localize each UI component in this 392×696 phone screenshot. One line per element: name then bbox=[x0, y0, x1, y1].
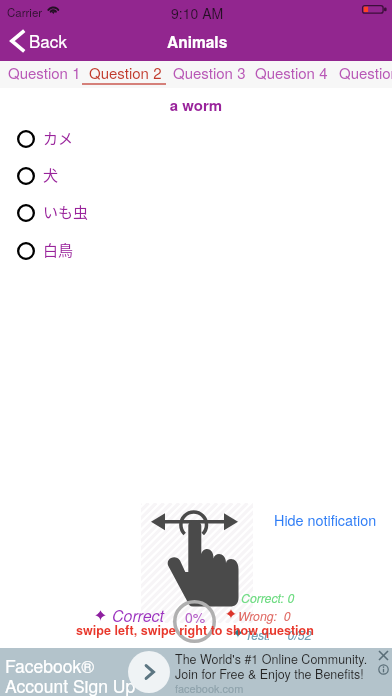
staticText: Question 2 bbox=[89, 62, 162, 83]
button[interactable]: いも虫 bbox=[0, 196, 392, 230]
button[interactable]: Question 2 bbox=[89, 61, 165, 88]
button[interactable]: Hide notification bbox=[274, 509, 377, 530]
staticText: Correct bbox=[112, 604, 165, 627]
staticText: Question 3 bbox=[173, 62, 246, 83]
staticText: Wrong: 0 bbox=[238, 607, 291, 624]
staticText: Correct: 0 bbox=[241, 589, 295, 606]
staticText: カメ bbox=[43, 127, 74, 149]
staticText: Back bbox=[29, 28, 67, 52]
staticText: swipe left, swipe right to show question bbox=[76, 621, 314, 639]
staticText: Facebook® bbox=[5, 653, 95, 678]
button[interactable]: 犬 bbox=[0, 159, 392, 193]
button[interactable]: Advertisement information bbox=[378, 664, 389, 675]
button[interactable]: 白鳥 bbox=[0, 234, 392, 268]
staticText: Question 5 bbox=[339, 62, 392, 83]
staticText: Test: 0/52 bbox=[245, 626, 312, 643]
button[interactable]: Question 5 bbox=[339, 61, 392, 88]
staticText: The World's #1 Online Community. bbox=[175, 650, 368, 668]
staticText: 白鳥 bbox=[43, 239, 74, 261]
staticText: Join for Free & Enjoy the Benefits! bbox=[175, 665, 364, 683]
staticText: Account Sign Up bbox=[5, 673, 136, 696]
button[interactable]: Question 1 bbox=[8, 61, 84, 88]
staticText: Carrier bbox=[7, 4, 43, 20]
button[interactable]: Open advertisement bbox=[128, 651, 170, 693]
staticText: 9:10 AM bbox=[171, 3, 224, 23]
button[interactable]: カメ bbox=[0, 122, 392, 156]
button[interactable]: Close advertisement bbox=[378, 650, 389, 661]
staticText: Question 1 bbox=[8, 62, 81, 83]
button[interactable]: Back bbox=[10, 20, 67, 61]
staticText: a worm bbox=[0, 94, 392, 115]
other: Swipe gesture bbox=[145, 500, 255, 615]
button[interactable]: Question 3 bbox=[173, 61, 249, 88]
staticText: いも虫 bbox=[43, 201, 89, 223]
staticText: 犬 bbox=[43, 164, 59, 186]
staticText: Animals bbox=[167, 31, 228, 53]
button[interactable]: Question 4 bbox=[255, 61, 331, 88]
staticText: 0% bbox=[175, 607, 215, 627]
staticText: facebook.com bbox=[175, 680, 244, 696]
button[interactable]: Facebook® bbox=[0, 648, 392, 696]
staticText: Question 4 bbox=[255, 62, 328, 83]
